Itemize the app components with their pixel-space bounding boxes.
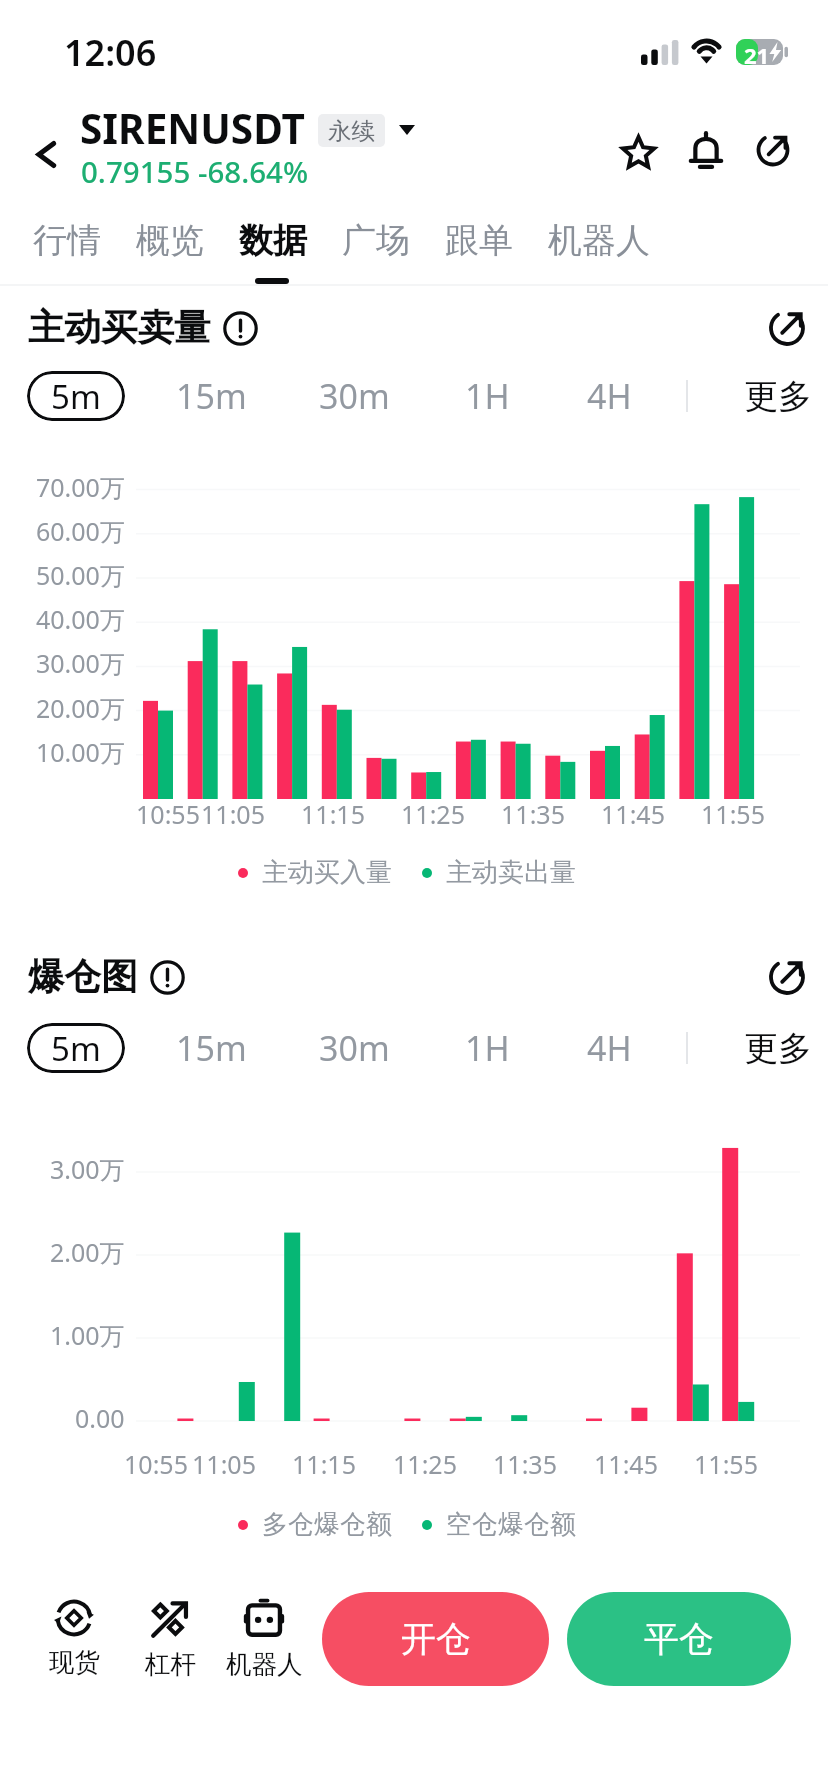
button[interactable]: 概览	[134, 213, 206, 268]
staticText: 1H	[465, 373, 510, 419]
staticText: 0.79155 -68.64%	[81, 151, 309, 191]
staticText: 更多	[744, 1027, 812, 1070]
button[interactable]: 更多	[744, 371, 828, 421]
button[interactable]: 30m	[309, 371, 399, 421]
staticText: 70.00万	[36, 470, 125, 504]
button[interactable]: 15m	[166, 371, 256, 421]
staticText: 11:35	[493, 1447, 557, 1481]
staticText: 更多	[744, 375, 812, 418]
staticText: 21	[744, 40, 770, 70]
staticText: 11:15	[301, 797, 365, 831]
staticText: 11:35	[501, 797, 565, 831]
button[interactable]: 4H	[564, 1023, 654, 1073]
button[interactable]: 平仓	[567, 1592, 791, 1686]
button[interactable]: 更多	[744, 1023, 828, 1073]
button[interactable]: 5m	[27, 1023, 125, 1073]
staticText: 40.00万	[36, 602, 125, 636]
staticText: 机器人	[226, 1648, 303, 1680]
staticText: 概览	[136, 219, 204, 262]
staticText: 11:55	[701, 797, 765, 831]
button[interactable]: 爆仓图	[28, 954, 185, 1000]
staticText: 11:55	[694, 1447, 758, 1481]
staticText: 1H	[465, 1025, 510, 1071]
staticText: 行情	[33, 219, 101, 262]
staticText: 永续	[328, 116, 375, 146]
staticText: 11:25	[393, 1447, 457, 1481]
button[interactable]: 5m	[27, 371, 125, 421]
button[interactable]: Back	[16, 124, 76, 184]
button[interactable]: Open full chart	[758, 299, 815, 356]
staticText: 11:05	[201, 797, 265, 831]
staticText: 4H	[587, 373, 632, 419]
staticText: 3.00万	[50, 1152, 125, 1186]
staticText: 50.00万	[36, 558, 125, 592]
button[interactable]: 1H	[442, 1023, 532, 1073]
staticText: 5m	[51, 1026, 101, 1071]
staticText: 11:45	[601, 797, 665, 831]
staticText: 15m	[176, 1025, 247, 1071]
staticText: 30.00万	[36, 646, 125, 680]
staticText: 60.00万	[36, 514, 125, 548]
staticText: 主动买卖量	[28, 305, 211, 351]
button[interactable]: 机器人	[546, 213, 652, 268]
button[interactable]: 4H	[564, 371, 654, 421]
staticText: 5m	[51, 374, 101, 419]
button[interactable]: 广场	[340, 213, 412, 268]
staticText: 1.00万	[50, 1318, 125, 1352]
staticText: 杠杆	[145, 1648, 196, 1680]
staticText: 30m	[319, 1025, 390, 1071]
staticText: 机器人	[548, 219, 650, 262]
staticText: 0.00	[75, 1401, 125, 1435]
staticText: 12:06	[64, 28, 157, 77]
button[interactable]: 主动买卖量	[28, 305, 258, 351]
button[interactable]: 数据	[237, 213, 309, 268]
staticText: 数据	[239, 219, 307, 262]
staticText: 开仓	[401, 1617, 471, 1661]
button[interactable]: 跟单	[443, 213, 515, 268]
staticText: 主动买入量	[262, 856, 392, 889]
staticText: 跟单	[445, 219, 513, 262]
button[interactable]: Price alerts	[678, 123, 734, 179]
staticText: 10:55	[136, 797, 200, 831]
staticText: 2.00万	[50, 1235, 125, 1269]
button[interactable]: Open full chart	[758, 948, 815, 1005]
staticText: 30m	[319, 373, 390, 419]
staticText: 11:15	[292, 1447, 356, 1481]
button[interactable]: 开仓	[322, 1592, 549, 1686]
staticText: 爆仓图	[28, 954, 138, 1000]
staticText: 11:05	[192, 1447, 256, 1481]
staticText: 10:55	[124, 1447, 188, 1481]
staticText: 4H	[587, 1025, 632, 1071]
staticText: 现货	[49, 1646, 100, 1678]
button[interactable]: Add to favorites	[610, 124, 666, 180]
button[interactable]: 1H	[442, 371, 532, 421]
staticText: 11:45	[594, 1447, 658, 1481]
staticText: 20.00万	[36, 691, 125, 725]
staticText: 10.00万	[36, 735, 125, 769]
staticText: 11:25	[401, 797, 465, 831]
button[interactable]: 15m	[166, 1023, 256, 1073]
button[interactable]: 现货	[36, 1598, 112, 1678]
button[interactable]: 杠杆	[132, 1598, 208, 1680]
button[interactable]: 30m	[309, 1023, 399, 1073]
staticText: 多仓爆仓额	[262, 1508, 392, 1541]
staticText: 空仓爆仓额	[446, 1508, 576, 1541]
button[interactable]: 行情	[31, 213, 103, 268]
staticText: 平仓	[644, 1617, 714, 1661]
staticText: 广场	[342, 219, 410, 262]
button[interactable]: Share	[745, 122, 801, 178]
staticText: 15m	[176, 373, 247, 419]
staticText: 主动卖出量	[446, 856, 576, 889]
staticText: SIRENUSDT	[80, 101, 305, 156]
button[interactable]: 机器人	[217, 1598, 311, 1680]
